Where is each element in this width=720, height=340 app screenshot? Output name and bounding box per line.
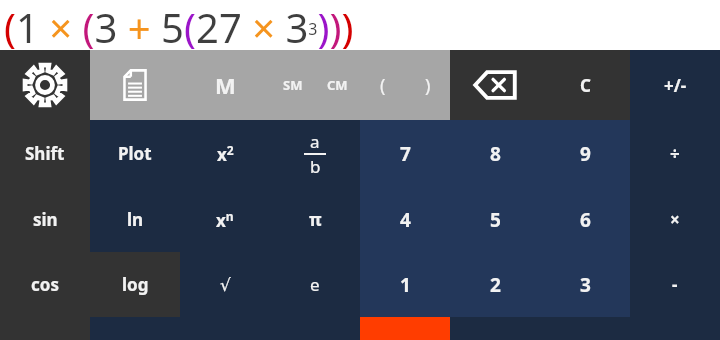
staticText: a xyxy=(310,130,320,153)
staticText: Plot xyxy=(118,142,152,165)
staticText: - xyxy=(672,273,678,296)
button[interactable]: 1 xyxy=(360,252,450,317)
button[interactable]: M xyxy=(180,50,270,120)
staticText: xn xyxy=(216,208,234,232)
staticText: b xyxy=(310,155,321,178)
button[interactable]: π xyxy=(270,187,360,252)
button[interactable]: ( xyxy=(360,50,405,120)
staticText: x2 xyxy=(217,142,234,166)
button[interactable]: 5 xyxy=(450,187,540,252)
button[interactable]: × xyxy=(630,187,720,252)
button[interactable]: Shift xyxy=(0,120,90,187)
staticText: 3 xyxy=(580,272,591,298)
button[interactable]: ÷ xyxy=(630,120,720,187)
staticText: cos xyxy=(31,273,59,296)
button[interactable]: 7 xyxy=(360,120,450,187)
staticText: 5 xyxy=(490,207,501,233)
staticText: 4 xyxy=(400,207,411,233)
staticText: e xyxy=(310,273,320,296)
staticText: ( xyxy=(380,73,386,98)
button[interactable]: ) xyxy=(405,50,450,120)
button[interactable]: x2 xyxy=(180,120,270,187)
staticText: ) xyxy=(425,73,431,98)
button[interactable]: cos xyxy=(0,252,90,317)
button[interactable]: 8 xyxy=(450,120,540,187)
staticText: 2 xyxy=(490,272,501,298)
button[interactable]: ln xyxy=(90,187,180,252)
button[interactable]: Settings xyxy=(0,50,90,120)
staticText: CM xyxy=(327,76,348,94)
staticText: C xyxy=(580,74,591,97)
button[interactable]: log xyxy=(90,252,180,317)
button[interactable]: CM xyxy=(315,50,360,120)
button[interactable]: +/- xyxy=(630,50,720,120)
button[interactable]: Backspace xyxy=(450,50,540,120)
button[interactable]: sin xyxy=(0,187,90,252)
staticText: √ xyxy=(220,275,231,295)
button[interactable]: 9 xyxy=(540,120,630,187)
button[interactable]: 3 xyxy=(540,252,630,317)
staticText: M xyxy=(215,70,236,100)
staticText: log xyxy=(122,273,149,296)
button[interactable]: 4 xyxy=(360,187,450,252)
staticText: π xyxy=(309,208,322,231)
button[interactable]: e xyxy=(270,252,360,317)
button[interactable]: √ xyxy=(180,252,270,317)
staticText: SM xyxy=(283,76,303,94)
staticText: ÷ xyxy=(670,142,680,165)
staticText: (1 × (3 + 5(27 × 33))) xyxy=(4,0,354,50)
staticText: × xyxy=(670,208,680,231)
staticText: Shift xyxy=(25,142,65,165)
button[interactable]: History xyxy=(90,50,180,120)
staticText: 9 xyxy=(580,141,591,167)
staticText: 8 xyxy=(490,141,501,167)
button[interactable]: Plot xyxy=(90,120,180,187)
staticText: sin xyxy=(33,208,58,231)
staticText: 6 xyxy=(580,207,591,233)
button[interactable]: a xyxy=(270,120,360,187)
button[interactable]: 6 xyxy=(540,187,630,252)
button[interactable]: SM xyxy=(270,50,315,120)
staticText: 1 xyxy=(400,272,411,298)
staticText: +/- xyxy=(664,74,687,97)
staticText: 7 xyxy=(400,141,411,167)
button[interactable]: C xyxy=(540,50,630,120)
button[interactable]: - xyxy=(630,252,720,317)
button[interactable]: xn xyxy=(180,187,270,252)
staticText: ln xyxy=(127,208,144,231)
button[interactable]: 2 xyxy=(450,252,540,317)
